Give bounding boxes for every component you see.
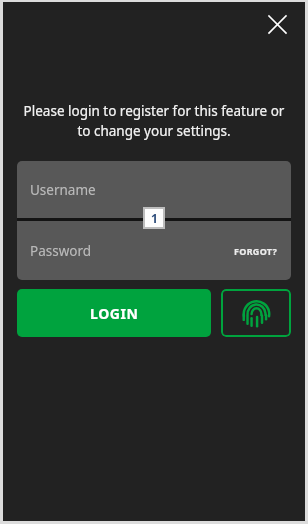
button[interactable]: Password [17,221,291,280]
staticText: Please login to register for this featur… [21,102,287,140]
button[interactable]: LOGIN [17,289,211,337]
button[interactable]: Username [17,161,291,218]
staticText: Username [30,181,96,199]
staticText: LOGIN [90,304,139,323]
staticText: Password [30,242,92,260]
staticText: 1 [151,210,158,226]
button[interactable]: Login with fingerprint [221,289,291,337]
staticText: FORGOT? [234,245,278,257]
button[interactable]: Close [259,6,295,42]
button[interactable]: FORGOT? [232,241,280,261]
